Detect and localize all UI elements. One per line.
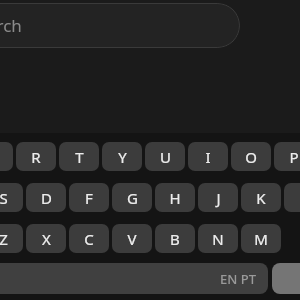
staticText: J [216,188,221,208]
button[interactable]: X [26,224,66,253]
staticText: EN PT [220,270,256,288]
button[interactable]: K [241,183,281,212]
button[interactable]: J [198,183,238,212]
staticText: C [84,229,94,249]
staticText: B [170,229,180,249]
button[interactable]: C [69,224,109,253]
button[interactable]: H [155,183,195,212]
staticText: D [41,188,52,208]
button[interactable]: B [155,224,195,253]
button[interactable]: Enter [272,263,300,294]
button[interactable]: Z [0,224,23,253]
staticText: V [127,229,137,249]
button[interactable]: R [16,142,56,171]
staticText: F [85,188,93,208]
button[interactable]: D [26,183,66,212]
button[interactable]: G [112,183,152,212]
staticText: R [31,147,41,167]
staticText: S [0,188,8,208]
staticText: I [205,147,211,167]
button[interactable]: V [112,224,152,253]
staticText: H [169,188,181,208]
button[interactable]: Y [102,142,142,171]
staticText: P [289,147,299,167]
staticText: Y [118,147,127,167]
staticText: Search [0,14,22,37]
staticText: X [42,229,51,249]
button[interactable]: I [188,142,228,171]
staticText: N [212,229,224,249]
button[interactable]: Space [0,263,268,294]
button[interactable]: M [241,224,281,253]
button[interactable]: T [59,142,99,171]
button[interactable]: Search [0,3,240,48]
staticText: G [127,188,138,208]
button[interactable]: P [274,142,300,171]
staticText: U [160,147,171,167]
button[interactable]: E [0,142,13,171]
button[interactable]: L [284,183,300,212]
button[interactable]: O [231,142,271,171]
staticText: Z [0,229,8,249]
staticText: M [254,229,268,249]
button[interactable]: U [145,142,185,171]
staticText: K [256,188,266,208]
button[interactable]: S [0,183,23,212]
button[interactable]: F [69,183,109,212]
staticText: O [245,147,257,167]
button[interactable]: N [198,224,238,253]
staticText: T [75,147,84,167]
